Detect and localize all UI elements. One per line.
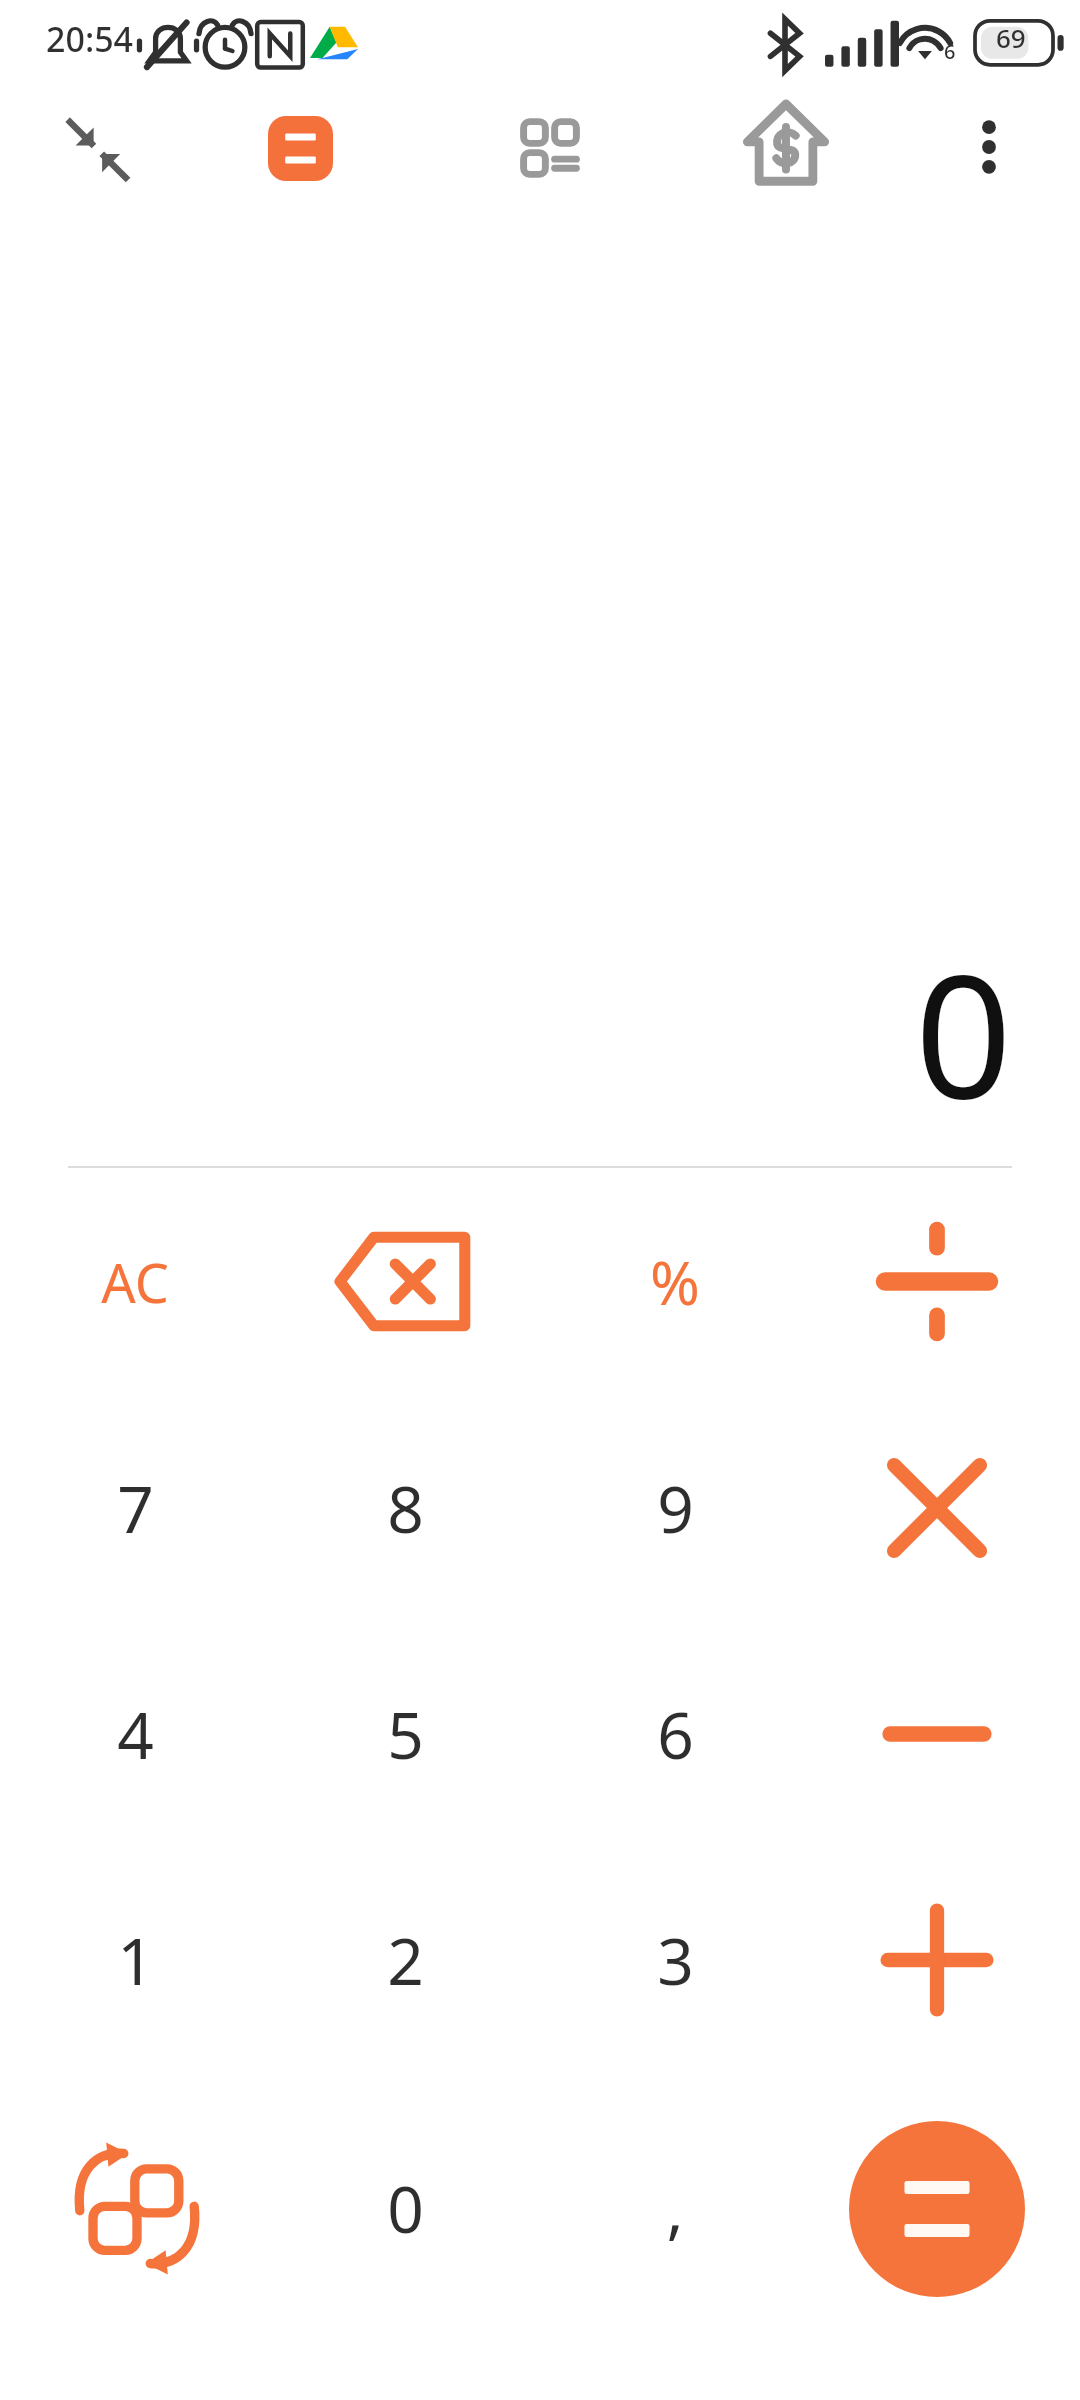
button[interactable]: 7 [0,1395,270,1621]
button[interactable]: AC [0,1168,270,1395]
button[interactable]: Calculator [252,96,348,200]
button[interactable]: 2 [270,1847,540,2073]
button[interactable]: More options [940,100,1034,194]
button[interactable]: Add [810,1847,1080,2073]
button[interactable]: , [540,2073,810,2344]
button[interactable]: Collapse [48,100,144,196]
staticText: 69 [996,20,1026,55]
button[interactable]: Convert [0,2073,270,2344]
staticText: % [650,1241,700,1323]
button[interactable]: Subtract [810,1621,1080,1847]
staticText: 0 [914,916,1012,1148]
button[interactable]: Equals [849,2121,1025,2297]
button[interactable]: Unit converter [502,98,598,194]
button[interactable]: 0 [270,2073,540,2344]
button[interactable]: 6 [540,1621,810,1847]
button[interactable]: Mortgage calculator [736,94,836,194]
staticText: , [666,2165,684,2252]
button[interactable]: Backspace [270,1168,540,1395]
staticText: 4 [117,1691,154,1778]
staticText: 8 [387,1465,424,1552]
staticText: 6 [944,38,956,65]
button[interactable]: 5 [270,1621,540,1847]
staticText: 5 [387,1691,424,1778]
staticText: 7 [117,1465,154,1552]
button[interactable]: 3 [540,1847,810,2073]
staticText: 6 [657,1691,694,1778]
staticText: 2 [387,1917,424,2004]
button[interactable]: 8 [270,1395,540,1621]
staticText: 9 [657,1465,694,1552]
button[interactable]: Divide [810,1168,1080,1395]
staticText: 0 [387,2165,424,2252]
staticText: 3 [657,1917,694,2004]
button[interactable]: 1 [0,1847,270,2073]
staticText: AC [101,1245,169,1319]
button[interactable]: 4 [0,1621,270,1847]
button[interactable]: % [540,1168,810,1395]
button[interactable]: Multiply [810,1395,1080,1621]
button[interactable]: 9 [540,1395,810,1621]
staticText: 20:54 [46,16,134,62]
staticText: 1 [117,1917,154,2004]
